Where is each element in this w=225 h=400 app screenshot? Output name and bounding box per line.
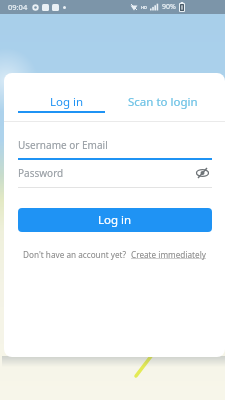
button[interactable]: Log in — [18, 94, 115, 110]
button[interactable]: Scan to login — [115, 94, 211, 110]
button[interactable]: Don't have an account yet? — [4, 247, 225, 261]
staticText: Don't have an account yet? — [23, 249, 131, 260]
staticText: Create immediately — [131, 249, 206, 260]
staticText: Log in — [98, 212, 132, 228]
button[interactable]: Log in — [18, 208, 212, 232]
staticText: Password — [18, 166, 64, 180]
staticText: 09:04 — [8, 2, 28, 12]
staticText: Scan to login — [128, 94, 198, 110]
staticText: Log in — [50, 94, 84, 110]
staticText: HD — [141, 5, 147, 10]
staticText: 90% — [162, 2, 176, 12]
staticText: Username or Email — [18, 138, 108, 152]
